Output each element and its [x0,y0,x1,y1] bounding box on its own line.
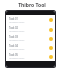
button[interactable] [6,61,55,67]
staticText: Updated today [9,48,25,51]
staticText: Task 05 [9,53,18,57]
staticText: Task 03 [9,35,18,39]
staticText: Task 02 [9,26,18,30]
staticText: Updated today [9,57,25,60]
staticText: Updated today [9,30,25,33]
button[interactable]: Task 03 [6,34,55,43]
staticText: Task 04 [9,44,18,48]
button[interactable]: Task 04 [6,43,55,52]
button[interactable] [6,11,55,15]
staticText: Task 01 [9,17,18,21]
staticText: Updated today [9,39,25,42]
button[interactable]: Task 02 [6,25,55,34]
button[interactable]: Task 05 [6,52,55,61]
staticText: Thibro Tool [18,2,46,9]
button[interactable]: Task 01 [6,15,55,25]
staticText: Updated today [9,21,25,24]
